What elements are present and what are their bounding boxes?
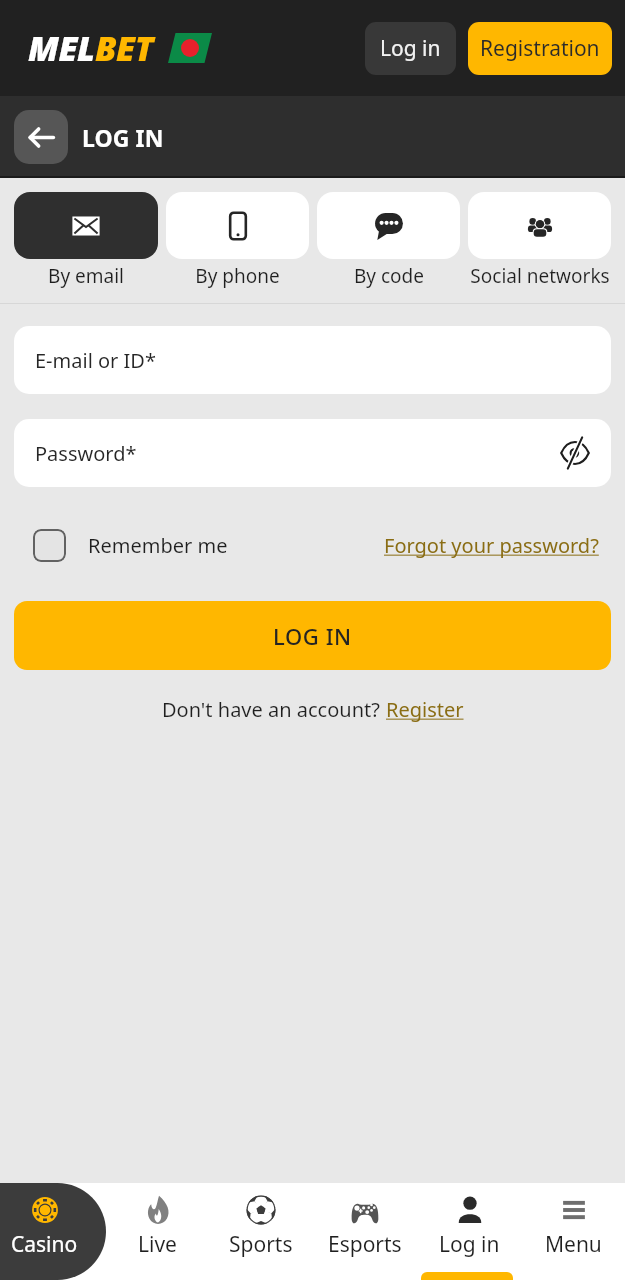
staticText: Sports <box>229 1230 293 1259</box>
staticText: Registration <box>480 34 600 63</box>
staticText: MEL <box>28 25 95 71</box>
button[interactable]: Registration <box>468 22 612 75</box>
button[interactable]: By phone <box>166 192 309 289</box>
button[interactable]: Casino <box>0 1183 106 1280</box>
button[interactable]: Log in <box>417 1183 521 1280</box>
button[interactable]: By email <box>14 192 158 289</box>
button[interactable]: By code <box>317 192 460 289</box>
button[interactable]: Sports <box>209 1183 313 1280</box>
button[interactable]: Menu <box>521 1183 625 1280</box>
staticText: Live <box>138 1230 177 1259</box>
staticText: E-mail or ID* <box>35 347 156 374</box>
staticText: Log in <box>439 1230 500 1259</box>
button[interactable]: Back <box>14 110 68 164</box>
staticText: Password* <box>35 440 137 467</box>
button[interactable]: LOG IN <box>14 601 611 670</box>
button[interactable]: Live <box>106 1183 209 1280</box>
staticText: Forgot your password? <box>384 532 599 559</box>
staticText: Remember me <box>88 532 228 559</box>
staticText: By phone <box>195 263 280 289</box>
staticText: Don't have an account? <box>162 696 386 723</box>
button[interactable]: Social networks <box>468 192 611 289</box>
staticText: Log in <box>380 34 441 63</box>
button[interactable]: Show password <box>555 433 595 473</box>
button[interactable]: Forgot your password? <box>384 532 599 559</box>
button[interactable]: E-mail or ID* <box>14 326 611 394</box>
staticText: BET <box>95 25 153 71</box>
staticText: By email <box>48 263 124 289</box>
staticText: Casino <box>11 1230 78 1259</box>
staticText: Social networks <box>470 263 610 289</box>
staticText: Esports <box>328 1230 402 1259</box>
button[interactable]: Remember me <box>33 529 228 562</box>
staticText: LOG IN <box>82 122 164 153</box>
button[interactable]: Log in <box>365 22 456 75</box>
button[interactable]: Password* <box>14 419 611 487</box>
button[interactable]: Register <box>386 696 464 723</box>
staticText: LOG IN <box>273 621 352 651</box>
staticText: Menu <box>545 1230 602 1259</box>
staticText: By code <box>354 263 424 289</box>
button[interactable]: Esports <box>313 1183 417 1280</box>
staticText: Register <box>386 696 464 723</box>
